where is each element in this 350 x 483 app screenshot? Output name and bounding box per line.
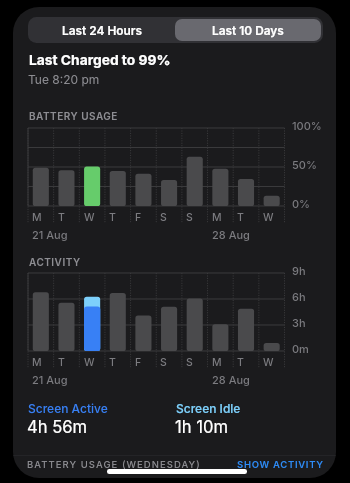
staticText: M <box>212 356 222 369</box>
staticText: S <box>186 356 193 369</box>
staticText: W <box>263 356 274 369</box>
staticText: T <box>109 211 116 224</box>
staticText: S <box>186 211 193 224</box>
staticText: S <box>160 356 167 369</box>
staticText: 9h <box>292 264 306 277</box>
staticText: Last Charged to 99% <box>29 52 171 69</box>
staticText: T <box>58 211 65 224</box>
button[interactable]: SHOW ACTIVITY <box>237 459 324 470</box>
staticText: T <box>237 211 244 224</box>
button[interactable]: Last 24 Hours <box>30 19 175 41</box>
staticText: 0% <box>292 197 311 210</box>
staticText: T <box>109 356 116 369</box>
staticText: Tue 8:20 pm <box>28 72 100 87</box>
staticText: T <box>237 356 244 369</box>
staticText: ACTIVITY <box>29 256 81 268</box>
staticText: 0m <box>292 342 309 355</box>
staticText: 21 Aug <box>32 228 68 241</box>
staticText: 50% <box>292 158 317 171</box>
button[interactable]: Screen Active <box>28 401 108 416</box>
staticText: Last 24 Hours <box>62 23 143 37</box>
staticText: F <box>135 356 142 369</box>
staticText: W <box>84 211 95 224</box>
staticText: M <box>212 211 222 224</box>
button[interactable]: BATTERY USAGE (WEDNESDAY) <box>27 459 201 470</box>
staticText: 1h 10m <box>175 417 228 437</box>
staticText: W <box>84 356 95 369</box>
staticText: 21 Aug <box>32 373 68 386</box>
button[interactable]: Last 10 Days <box>175 19 321 41</box>
staticText: 3h <box>292 316 306 329</box>
staticText: BATTERY USAGE <box>29 110 118 122</box>
staticText: F <box>135 211 142 224</box>
staticText: W <box>263 211 274 224</box>
staticText: 28 Aug <box>212 228 250 241</box>
staticText: S <box>160 211 167 224</box>
staticText: 6h <box>292 290 306 303</box>
other: Home indicator <box>107 469 247 474</box>
button[interactable]: Screen Idle <box>176 401 241 416</box>
staticText: T <box>58 356 65 369</box>
staticText: 28 Aug <box>212 373 250 386</box>
staticText: M <box>32 211 42 224</box>
staticText: M <box>32 356 42 369</box>
staticText: Last 10 Days <box>212 23 284 37</box>
staticText: 100% <box>292 119 322 132</box>
staticText: 4h 56m <box>27 417 88 437</box>
